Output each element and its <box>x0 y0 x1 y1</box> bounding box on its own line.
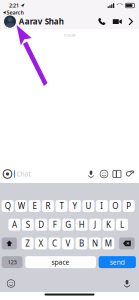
button[interactable]: T <box>55 200 67 212</box>
staticText: I <box>100 201 103 211</box>
staticText: 2:21 <box>9 2 19 9</box>
button[interactable]: S <box>22 219 34 231</box>
button[interactable]: Y <box>69 200 81 212</box>
button[interactable]: I <box>96 200 108 212</box>
button[interactable]: Delete <box>119 237 135 249</box>
button[interactable]: Z <box>22 237 34 249</box>
button[interactable]: R <box>42 200 54 212</box>
button[interactable]: Voice message <box>84 166 97 182</box>
staticText: Q <box>5 201 11 211</box>
staticText: V <box>65 238 70 249</box>
staticText: 123 <box>8 259 17 266</box>
button[interactable]: F <box>49 219 61 231</box>
staticText: T <box>59 201 63 211</box>
button[interactable]: K <box>103 219 114 231</box>
button[interactable]: U <box>82 200 94 212</box>
staticText: K <box>106 219 111 230</box>
button[interactable]: B <box>75 237 87 249</box>
staticText: space <box>52 258 70 267</box>
staticText: P <box>126 201 131 211</box>
button[interactable]: W <box>15 200 27 212</box>
staticText: R <box>45 201 50 211</box>
staticText: Y <box>72 201 77 211</box>
button[interactable]: Chat <box>14 166 49 182</box>
button[interactable]: X <box>35 237 47 249</box>
staticText: D <box>38 219 44 230</box>
button[interactable]: J <box>89 219 101 231</box>
button[interactable]: Dictation <box>119 278 139 289</box>
staticText: J <box>94 219 96 230</box>
staticText: O <box>112 201 118 211</box>
button[interactable]: Voice call <box>94 15 109 27</box>
staticText: Chat <box>16 170 30 178</box>
button[interactable]: P <box>123 200 135 212</box>
button[interactable]: O <box>109 200 121 212</box>
staticText: E <box>33 201 37 211</box>
button[interactable]: N <box>89 237 101 249</box>
button[interactable]: G <box>62 219 74 231</box>
staticText: M <box>105 238 112 249</box>
button[interactable]: V <box>62 237 74 249</box>
staticText: send <box>110 258 125 267</box>
button[interactable]: 123 <box>2 256 23 268</box>
staticText: F <box>53 219 57 230</box>
button[interactable]: D <box>35 219 47 231</box>
staticText: S <box>26 219 30 230</box>
button[interactable]: Q <box>2 200 14 212</box>
staticText: B <box>79 238 84 249</box>
button[interactable]: Search <box>0 10 139 15</box>
button[interactable]: Stickers <box>97 166 110 182</box>
staticText: Z <box>25 238 30 249</box>
button[interactable]: L <box>116 219 128 231</box>
button[interactable]: A <box>8 219 20 231</box>
staticText: G <box>65 219 71 230</box>
staticText: TODAY <box>63 32 75 38</box>
staticText: Aarav Shah <box>19 16 64 27</box>
staticText: W <box>18 201 25 211</box>
button[interactable]: send <box>99 256 136 268</box>
staticText: A <box>12 219 17 230</box>
staticText: U <box>85 201 91 211</box>
staticText: Search <box>7 9 24 16</box>
button[interactable]: Aarav Shah <box>0 15 64 27</box>
button[interactable]: C <box>49 237 60 249</box>
button[interactable]: Attach <box>123 166 137 182</box>
button[interactable]: Camera <box>1 166 14 182</box>
staticText: X <box>39 238 44 249</box>
button[interactable]: Video call <box>109 16 125 27</box>
staticText: H <box>79 219 85 230</box>
staticText: L <box>120 219 124 230</box>
staticText: N <box>92 238 98 249</box>
button[interactable]: Emoji keyboard <box>0 278 19 289</box>
button[interactable]: E <box>29 200 40 212</box>
button[interactable]: H <box>76 219 88 231</box>
staticText: C <box>52 238 57 249</box>
button[interactable]: More options <box>125 15 136 27</box>
button[interactable]: Documents <box>110 166 123 182</box>
button[interactable]: Shift <box>2 237 17 249</box>
button[interactable]: M <box>102 237 114 249</box>
button[interactable]: space <box>25 256 96 268</box>
